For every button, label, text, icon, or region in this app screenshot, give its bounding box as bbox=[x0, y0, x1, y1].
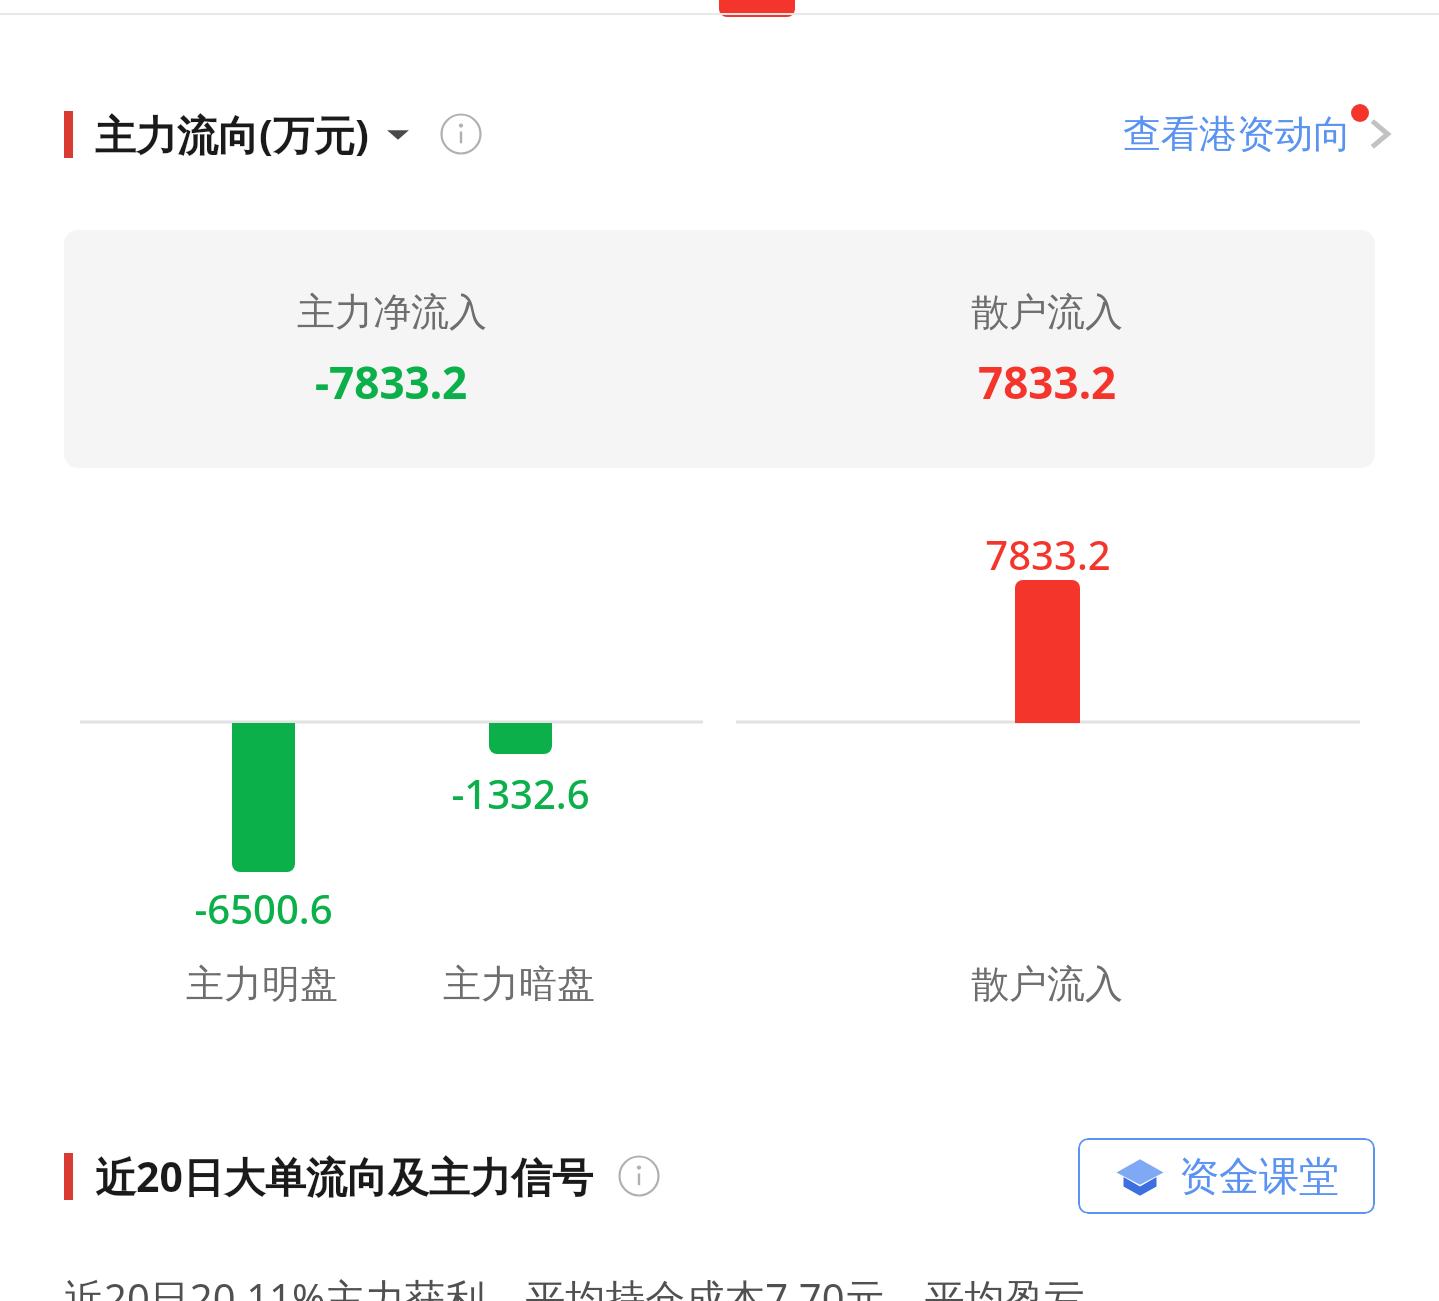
staticText: 资金课堂 bbox=[1179, 1151, 1339, 1201]
staticText: -6500.6 bbox=[194, 881, 333, 935]
button[interactable]: 说明 bbox=[437, 110, 485, 158]
button[interactable]: 查看港资动向 bbox=[1123, 110, 1439, 158]
staticText: 主力暗盘 bbox=[443, 960, 595, 1008]
staticText: 7833.2 bbox=[978, 352, 1117, 412]
staticText: 7833.2 bbox=[985, 527, 1111, 581]
button[interactable]: 近20日大单流向及主力信号 bbox=[95, 1148, 593, 1204]
staticText: -1332.6 bbox=[451, 766, 590, 820]
staticText: 主力净流入 bbox=[297, 288, 487, 336]
button[interactable]: 主力流向(万元) bbox=[95, 106, 411, 162]
staticText: 近20日20.11%主力获利，平均持仓成本7.70元，平均盈亏 bbox=[64, 1270, 1085, 1301]
button[interactable]: 主力净流入 bbox=[64, 230, 1375, 468]
button[interactable]: 说明 bbox=[615, 1152, 663, 1200]
staticText: -7833.2 bbox=[315, 352, 468, 412]
staticText: 主力明盘 bbox=[186, 960, 338, 1008]
button[interactable]: 资金课堂 bbox=[1078, 1138, 1375, 1214]
staticText: 主力流向(万元) bbox=[95, 106, 369, 162]
staticText: 散户流入 bbox=[971, 960, 1123, 1008]
staticText: 散户流入 bbox=[971, 288, 1123, 336]
staticText: 查看港资动向 bbox=[1123, 110, 1351, 158]
